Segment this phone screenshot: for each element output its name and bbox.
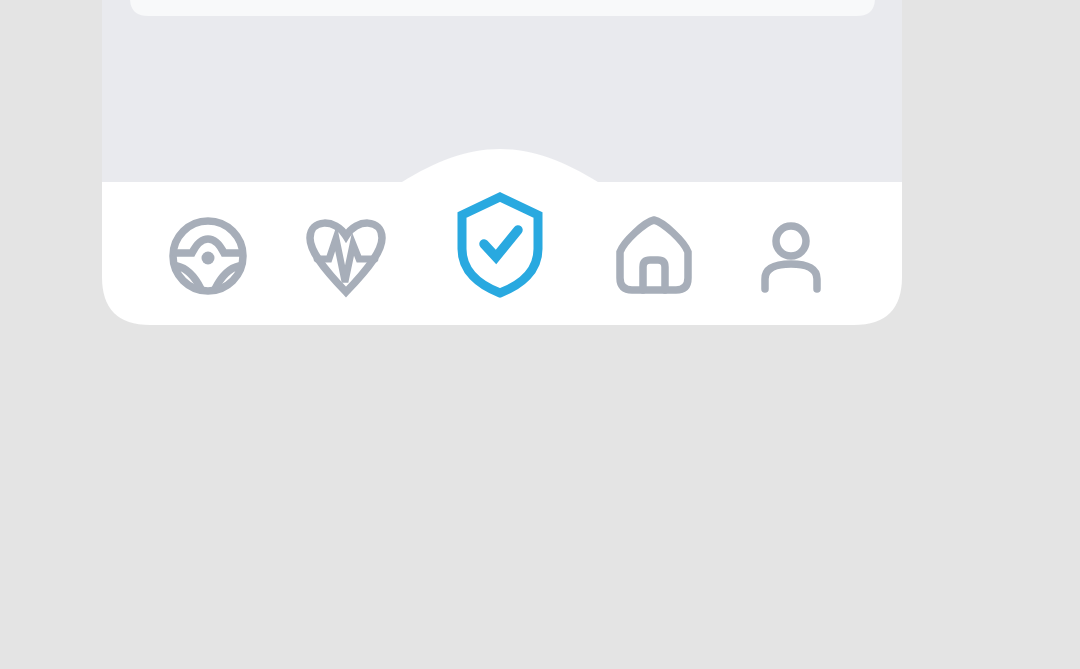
button[interactable]: Profile [722, 182, 860, 325]
button[interactable]: Drive [139, 182, 277, 325]
button[interactable]: Home [585, 182, 723, 325]
button[interactable]: Health [277, 182, 415, 325]
button[interactable]: Protection [431, 182, 569, 325]
